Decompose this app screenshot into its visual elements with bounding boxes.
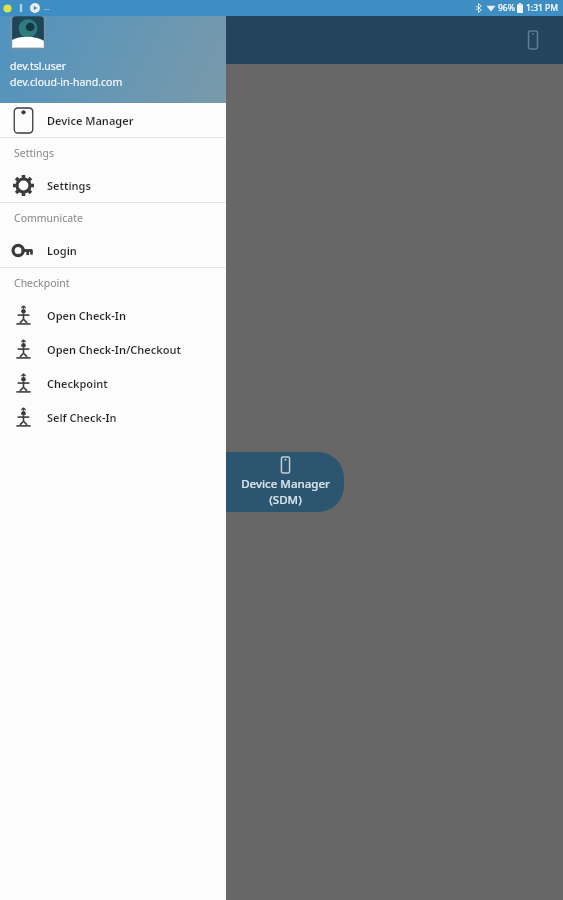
staticText: Open Check-In/Checkout xyxy=(47,342,182,357)
button[interactable]: Settings xyxy=(0,168,226,202)
staticText: Checkpoint xyxy=(14,276,70,290)
staticText: Communicate xyxy=(14,211,83,225)
staticText: dev.tsl.user xyxy=(10,59,67,73)
staticText: 96% xyxy=(498,2,515,14)
button[interactable]: Login xyxy=(0,233,226,267)
staticText: Device Manager xyxy=(47,113,134,128)
button[interactable]: Device Manager xyxy=(226,452,344,512)
staticText: dev.cloud-in-hand.com xyxy=(10,75,123,89)
staticText: Device Manager xyxy=(241,476,330,492)
button[interactable]: Checkpoint xyxy=(0,366,226,400)
staticText: Checkpoint xyxy=(47,376,108,391)
staticText: ... xyxy=(44,3,50,13)
staticText: Self Check-In xyxy=(47,410,117,425)
button[interactable]: Open Check-In/Checkout xyxy=(0,332,226,366)
staticText: Open Check-In xyxy=(47,308,126,323)
staticText: 1:31 PM xyxy=(526,2,559,14)
button[interactable]: Device Manager xyxy=(515,22,551,58)
staticText: (SDM) xyxy=(269,492,302,508)
staticText: Login xyxy=(47,243,77,258)
button[interactable]: Device Manager xyxy=(0,103,226,137)
button[interactable]: Self Check-In xyxy=(0,400,226,434)
button[interactable]: Open Check-In xyxy=(0,298,226,332)
staticText: Settings xyxy=(47,178,91,193)
staticText: Settings xyxy=(14,146,54,160)
